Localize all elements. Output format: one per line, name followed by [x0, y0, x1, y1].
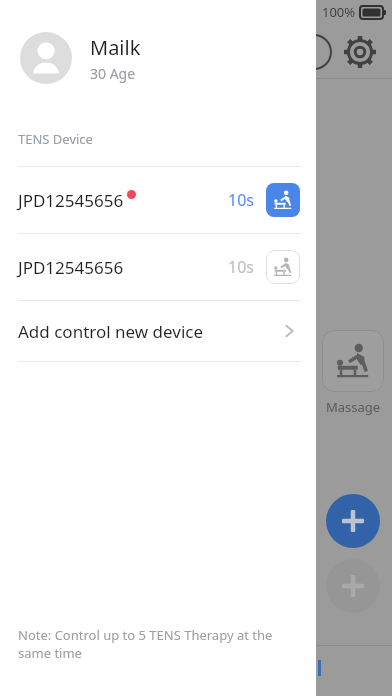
button[interactable]: Mailk [0, 32, 316, 84]
button[interactable]: Add control new device [0, 301, 316, 361]
button[interactable]: JPD12545656 [0, 167, 316, 233]
staticText: JPD12545656 [18, 256, 124, 279]
button[interactable]: Close drawer [0, 0, 392, 696]
staticText: JPD12545656 [18, 189, 124, 212]
button[interactable]: JPD12545656 [0, 234, 316, 300]
button[interactable]: Add [326, 494, 380, 548]
staticText: 100% [322, 3, 356, 21]
staticText: 10s [228, 256, 254, 278]
button[interactable]: Start therapy on JPD12545656 [266, 250, 300, 284]
staticText: Mailk [90, 34, 141, 61]
button[interactable]: Start therapy on JPD12545656 [266, 183, 300, 217]
staticText: TENS Device [18, 130, 93, 148]
staticText: Add control new device [18, 320, 280, 343]
button[interactable]: Settings [340, 32, 380, 72]
staticText: 30 Age [90, 64, 136, 83]
staticText: Note: Control up to 5 TENS Therapy at th… [18, 626, 294, 662]
staticText: Massage [326, 398, 381, 416]
button[interactable]: Add more [326, 559, 380, 613]
staticText: 10s [228, 189, 254, 211]
button[interactable]: Massage [322, 330, 384, 392]
